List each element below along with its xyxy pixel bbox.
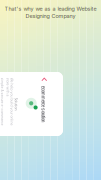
staticText: We help you build your online store with… <box>1 118 49 126</box>
staticText: Designing Company <box>25 13 75 19</box>
staticText: That's why we as a leading Website <box>4 5 96 12</box>
button[interactable]: Back <box>0 84 6 92</box>
staticText: Ecommerce Solution <box>10 87 46 91</box>
